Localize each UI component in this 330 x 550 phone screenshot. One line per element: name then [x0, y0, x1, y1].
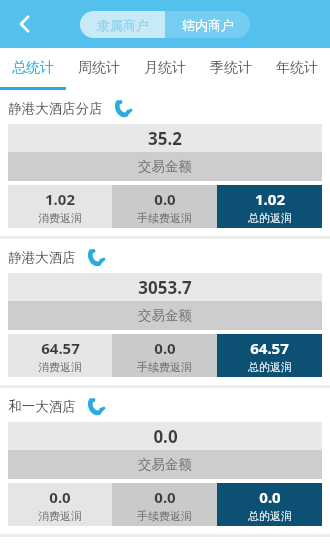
button[interactable]: 0.0: [112, 483, 217, 526]
button[interactable]: 64.57: [217, 334, 322, 377]
button[interactable]: 1.02: [217, 185, 322, 228]
staticText: 总的返润: [248, 360, 292, 374]
staticText: 静港大酒店分店: [8, 100, 103, 117]
staticText: 消费返润: [38, 211, 82, 225]
staticText: 年统计: [276, 59, 318, 77]
staticText: 3053.7: [138, 276, 192, 299]
staticText: 64.57: [250, 338, 289, 358]
button[interactable]: 总统计: [0, 48, 66, 87]
staticText: 季统计: [210, 59, 252, 77]
button[interactable]: 隶属商户: [80, 11, 165, 38]
button[interactable]: 1.02: [8, 185, 112, 228]
staticText: 消费返润: [38, 509, 82, 523]
button[interactable]: 辖内商户: [165, 11, 250, 38]
staticText: 静港大酒店: [8, 249, 76, 266]
staticText: 1.02: [255, 189, 285, 209]
staticText: 辖内商户: [182, 17, 234, 33]
button[interactable]: Back: [6, 5, 44, 43]
staticText: 交易金额: [138, 307, 192, 324]
staticText: 35.2: [148, 127, 182, 150]
staticText: 1.02: [45, 189, 75, 209]
staticText: 0.0: [153, 425, 178, 448]
staticText: 总统计: [12, 59, 54, 77]
button[interactable]: 静港大酒店: [0, 239, 330, 385]
staticText: 总的返润: [248, 509, 292, 523]
button[interactable]: 0.0: [112, 334, 217, 377]
button[interactable]: 0.0: [217, 483, 322, 526]
staticText: 0.0: [49, 487, 71, 507]
button[interactable]: 和一大酒店: [0, 388, 330, 534]
staticText: 交易金额: [138, 456, 192, 473]
button[interactable]: Call: [86, 395, 108, 417]
staticText: 64.57: [41, 338, 80, 358]
staticText: 0.0: [154, 189, 176, 209]
staticText: 0.0: [154, 487, 176, 507]
staticText: 交易金额: [138, 158, 192, 175]
staticText: 0.0: [259, 487, 281, 507]
button[interactable]: Call: [86, 246, 108, 268]
staticText: 手续费返润: [137, 360, 192, 374]
staticText: 月统计: [144, 59, 186, 77]
staticText: 隶属商户: [97, 17, 149, 33]
staticText: 手续费返润: [137, 211, 192, 225]
button[interactable]: 0.0: [112, 185, 217, 228]
staticText: 总的返润: [248, 211, 292, 225]
button[interactable]: 0.0: [8, 483, 112, 526]
staticText: 和一大酒店: [8, 398, 76, 415]
staticText: 消费返润: [38, 360, 82, 374]
button[interactable]: 月统计: [132, 48, 198, 87]
button[interactable]: Call: [113, 97, 135, 119]
button[interactable]: 周统计: [66, 48, 132, 87]
button[interactable]: 季统计: [198, 48, 264, 87]
staticText: 手续费返润: [137, 509, 192, 523]
button[interactable]: 年统计: [264, 48, 330, 87]
button[interactable]: 64.57: [8, 334, 112, 377]
staticText: 周统计: [78, 59, 120, 77]
button[interactable]: 静港大酒店分店: [0, 90, 330, 236]
staticText: 0.0: [154, 338, 176, 358]
